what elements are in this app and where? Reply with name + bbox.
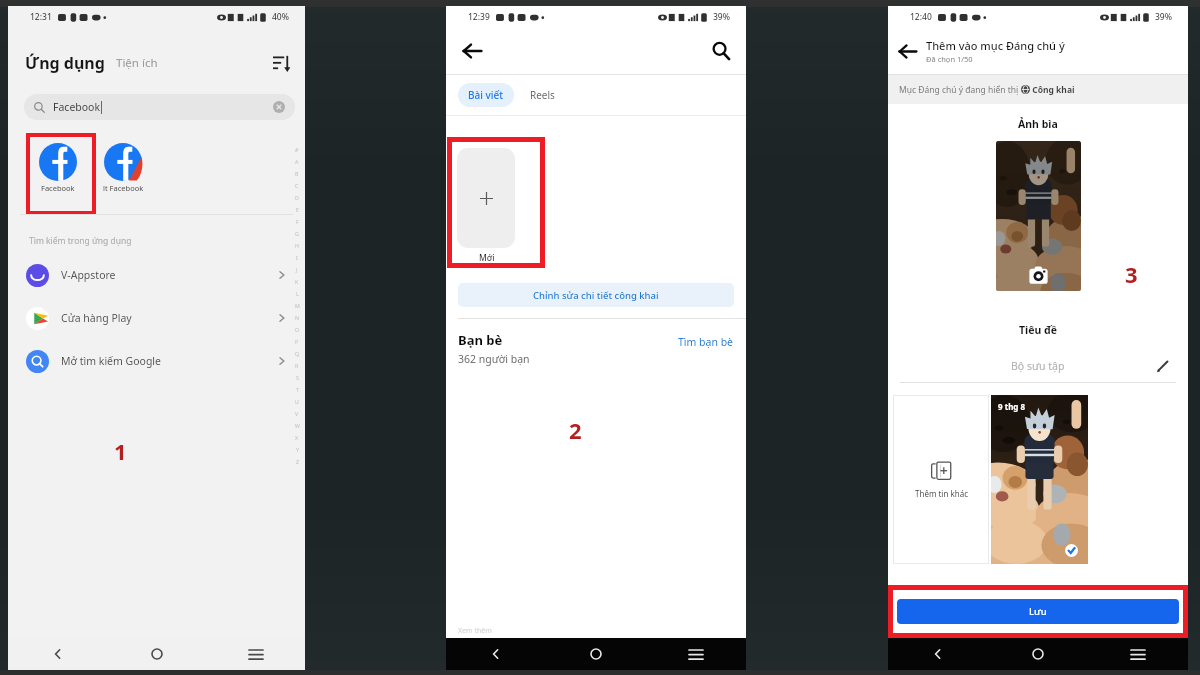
staticText: F xyxy=(296,218,299,225)
button[interactable]: Facebook xyxy=(24,94,295,120)
staticText: R xyxy=(295,362,299,369)
button[interactable]: Tìm bạn bè xyxy=(678,335,734,349)
staticText: Công khai xyxy=(1030,84,1075,96)
staticText: E xyxy=(296,206,299,213)
staticText: 39% xyxy=(713,11,730,23)
button[interactable]: Home xyxy=(546,638,646,670)
button[interactable]: Back xyxy=(8,638,107,670)
staticText: Mục Đáng chú ý đang hiển thị xyxy=(899,84,1021,96)
button[interactable]: Edit xyxy=(1156,360,1169,373)
staticText: Mới xyxy=(479,252,495,264)
staticText: 12:39 xyxy=(468,11,490,23)
staticText: Facebook xyxy=(53,100,101,114)
button[interactable]: Recents xyxy=(1088,638,1188,670)
staticText: Bài viết xyxy=(468,88,504,102)
button[interactable]: Story 9 thg 8, selected xyxy=(991,395,1088,564)
staticText: Tiêu đề xyxy=(1019,323,1058,337)
staticText: 1 xyxy=(114,436,127,466)
button[interactable]: Back xyxy=(898,42,917,61)
staticText: A xyxy=(295,158,299,165)
button[interactable]: Home xyxy=(107,638,206,670)
staticText: lt Facebook xyxy=(103,183,144,193)
staticText: Ảnh bìa xyxy=(1018,117,1058,131)
staticText: C xyxy=(295,182,299,189)
button[interactable]: Recents xyxy=(646,638,746,670)
staticText: Thêm tin khác xyxy=(915,488,968,499)
staticText: W xyxy=(295,422,300,429)
staticText: 2 xyxy=(569,415,582,445)
staticText: Cửa hàng Play xyxy=(61,311,132,325)
staticText: Đã chọn 1/50 xyxy=(926,54,973,64)
button[interactable]: V-Appstore xyxy=(8,256,305,294)
staticText: L xyxy=(296,290,299,297)
staticText: Tìm bạn bè xyxy=(678,335,734,349)
staticText: Z xyxy=(296,458,299,465)
staticText: Mở tìm kiếm Google xyxy=(61,354,161,368)
staticText: Facebook xyxy=(41,183,75,193)
button[interactable]: Bài viết xyxy=(458,83,514,107)
staticText: Reels xyxy=(530,88,555,102)
button[interactable]: Mở tìm kiếm Google xyxy=(8,342,305,380)
button[interactable]: Reels xyxy=(522,83,563,107)
staticText: Tìm kiếm trong ứng dụng xyxy=(29,235,132,247)
button[interactable]: Back xyxy=(888,638,988,670)
button[interactable]: Facebook xyxy=(32,143,84,193)
staticText: P xyxy=(295,338,299,345)
staticText: V xyxy=(295,410,299,417)
staticText: J xyxy=(296,266,298,273)
button[interactable]: Back xyxy=(446,638,546,670)
button[interactable]: Thêm tin khác xyxy=(893,395,989,564)
staticText: X xyxy=(295,434,299,441)
staticText: D xyxy=(295,194,299,201)
button[interactable]: lt Facebook xyxy=(97,143,149,193)
button[interactable]: Clear xyxy=(273,101,285,113)
staticText: Xem thêm xyxy=(458,626,492,636)
button[interactable]: Change cover photo xyxy=(1029,266,1048,285)
staticText: T xyxy=(296,386,299,393)
staticText: 40% xyxy=(272,11,289,23)
staticText: Tiện ích xyxy=(116,55,158,71)
button[interactable]: Recents xyxy=(206,638,305,670)
button[interactable]: Search xyxy=(712,42,730,60)
staticText: 12:31 xyxy=(30,11,52,23)
staticText: H xyxy=(295,242,299,249)
button[interactable]: Back xyxy=(462,41,482,61)
staticText: U xyxy=(295,398,299,405)
staticText: 3 xyxy=(1125,259,1138,289)
staticText: S xyxy=(296,374,299,381)
button[interactable]: Cửa hàng Play xyxy=(8,299,305,337)
staticText: I xyxy=(296,254,298,261)
staticText: N xyxy=(295,314,299,321)
staticText: K xyxy=(295,278,299,285)
staticText: V-Appstore xyxy=(61,268,116,282)
staticText: Q xyxy=(295,350,300,357)
staticText: B xyxy=(295,170,299,177)
staticText: 9 thg 8 xyxy=(998,401,1026,412)
staticText: G xyxy=(295,230,299,237)
staticText: Thêm vào mục Đáng chú ý xyxy=(926,38,1065,53)
staticText: Bộ sưu tập xyxy=(1011,359,1065,373)
staticText: Bạn bè xyxy=(458,331,503,349)
button[interactable]: Sort xyxy=(270,52,292,74)
staticText: Chỉnh sửa chi tiết công khai xyxy=(533,289,659,302)
staticText: Lưu xyxy=(1029,605,1047,618)
staticText: O xyxy=(295,326,300,333)
staticText: Ứng dụng xyxy=(25,52,105,74)
staticText: M xyxy=(295,302,300,309)
staticText: 362 người bạn xyxy=(458,352,530,366)
staticText: 12:40 xyxy=(910,11,932,23)
staticText: 39% xyxy=(1155,11,1172,23)
button[interactable]: Cover photo xyxy=(996,141,1081,291)
button[interactable]: Chỉnh sửa chi tiết công khai xyxy=(458,283,734,307)
button[interactable]: Home xyxy=(988,638,1088,670)
staticText: # xyxy=(295,146,299,153)
staticText: Y xyxy=(296,446,299,453)
button[interactable]: Lưu xyxy=(897,599,1179,624)
button[interactable]: Mới xyxy=(457,148,517,264)
